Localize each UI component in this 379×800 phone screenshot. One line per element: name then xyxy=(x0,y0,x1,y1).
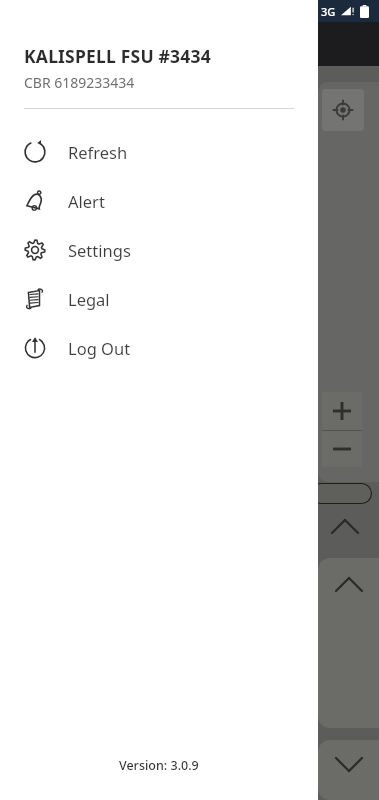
staticText: KALISPELL FSU #3434 xyxy=(24,44,211,68)
staticText: Log Out xyxy=(68,337,131,359)
button[interactable]: Legal xyxy=(0,274,318,323)
button[interactable]: Expand xyxy=(326,570,372,598)
button[interactable]: Zoom in xyxy=(322,392,362,430)
staticText: Refresh xyxy=(68,141,128,163)
button[interactable]: Settings xyxy=(0,225,318,274)
button[interactable]: Log Out xyxy=(0,323,318,372)
button[interactable]: Refresh xyxy=(0,127,318,176)
staticText: Version: 3.0.9 xyxy=(119,757,199,774)
staticText: Legal xyxy=(68,288,110,310)
staticText: Settings xyxy=(68,239,131,261)
button[interactable]: Show more xyxy=(326,750,372,778)
button[interactable]: Zoom out xyxy=(322,431,362,467)
button[interactable]: Collapse xyxy=(322,512,368,540)
staticText: Alert xyxy=(68,190,105,212)
button[interactable]: My location xyxy=(322,89,364,131)
button[interactable]: Alert xyxy=(0,176,318,225)
staticText: 3G xyxy=(321,4,336,19)
staticText: CBR 6189233434 xyxy=(24,73,135,92)
